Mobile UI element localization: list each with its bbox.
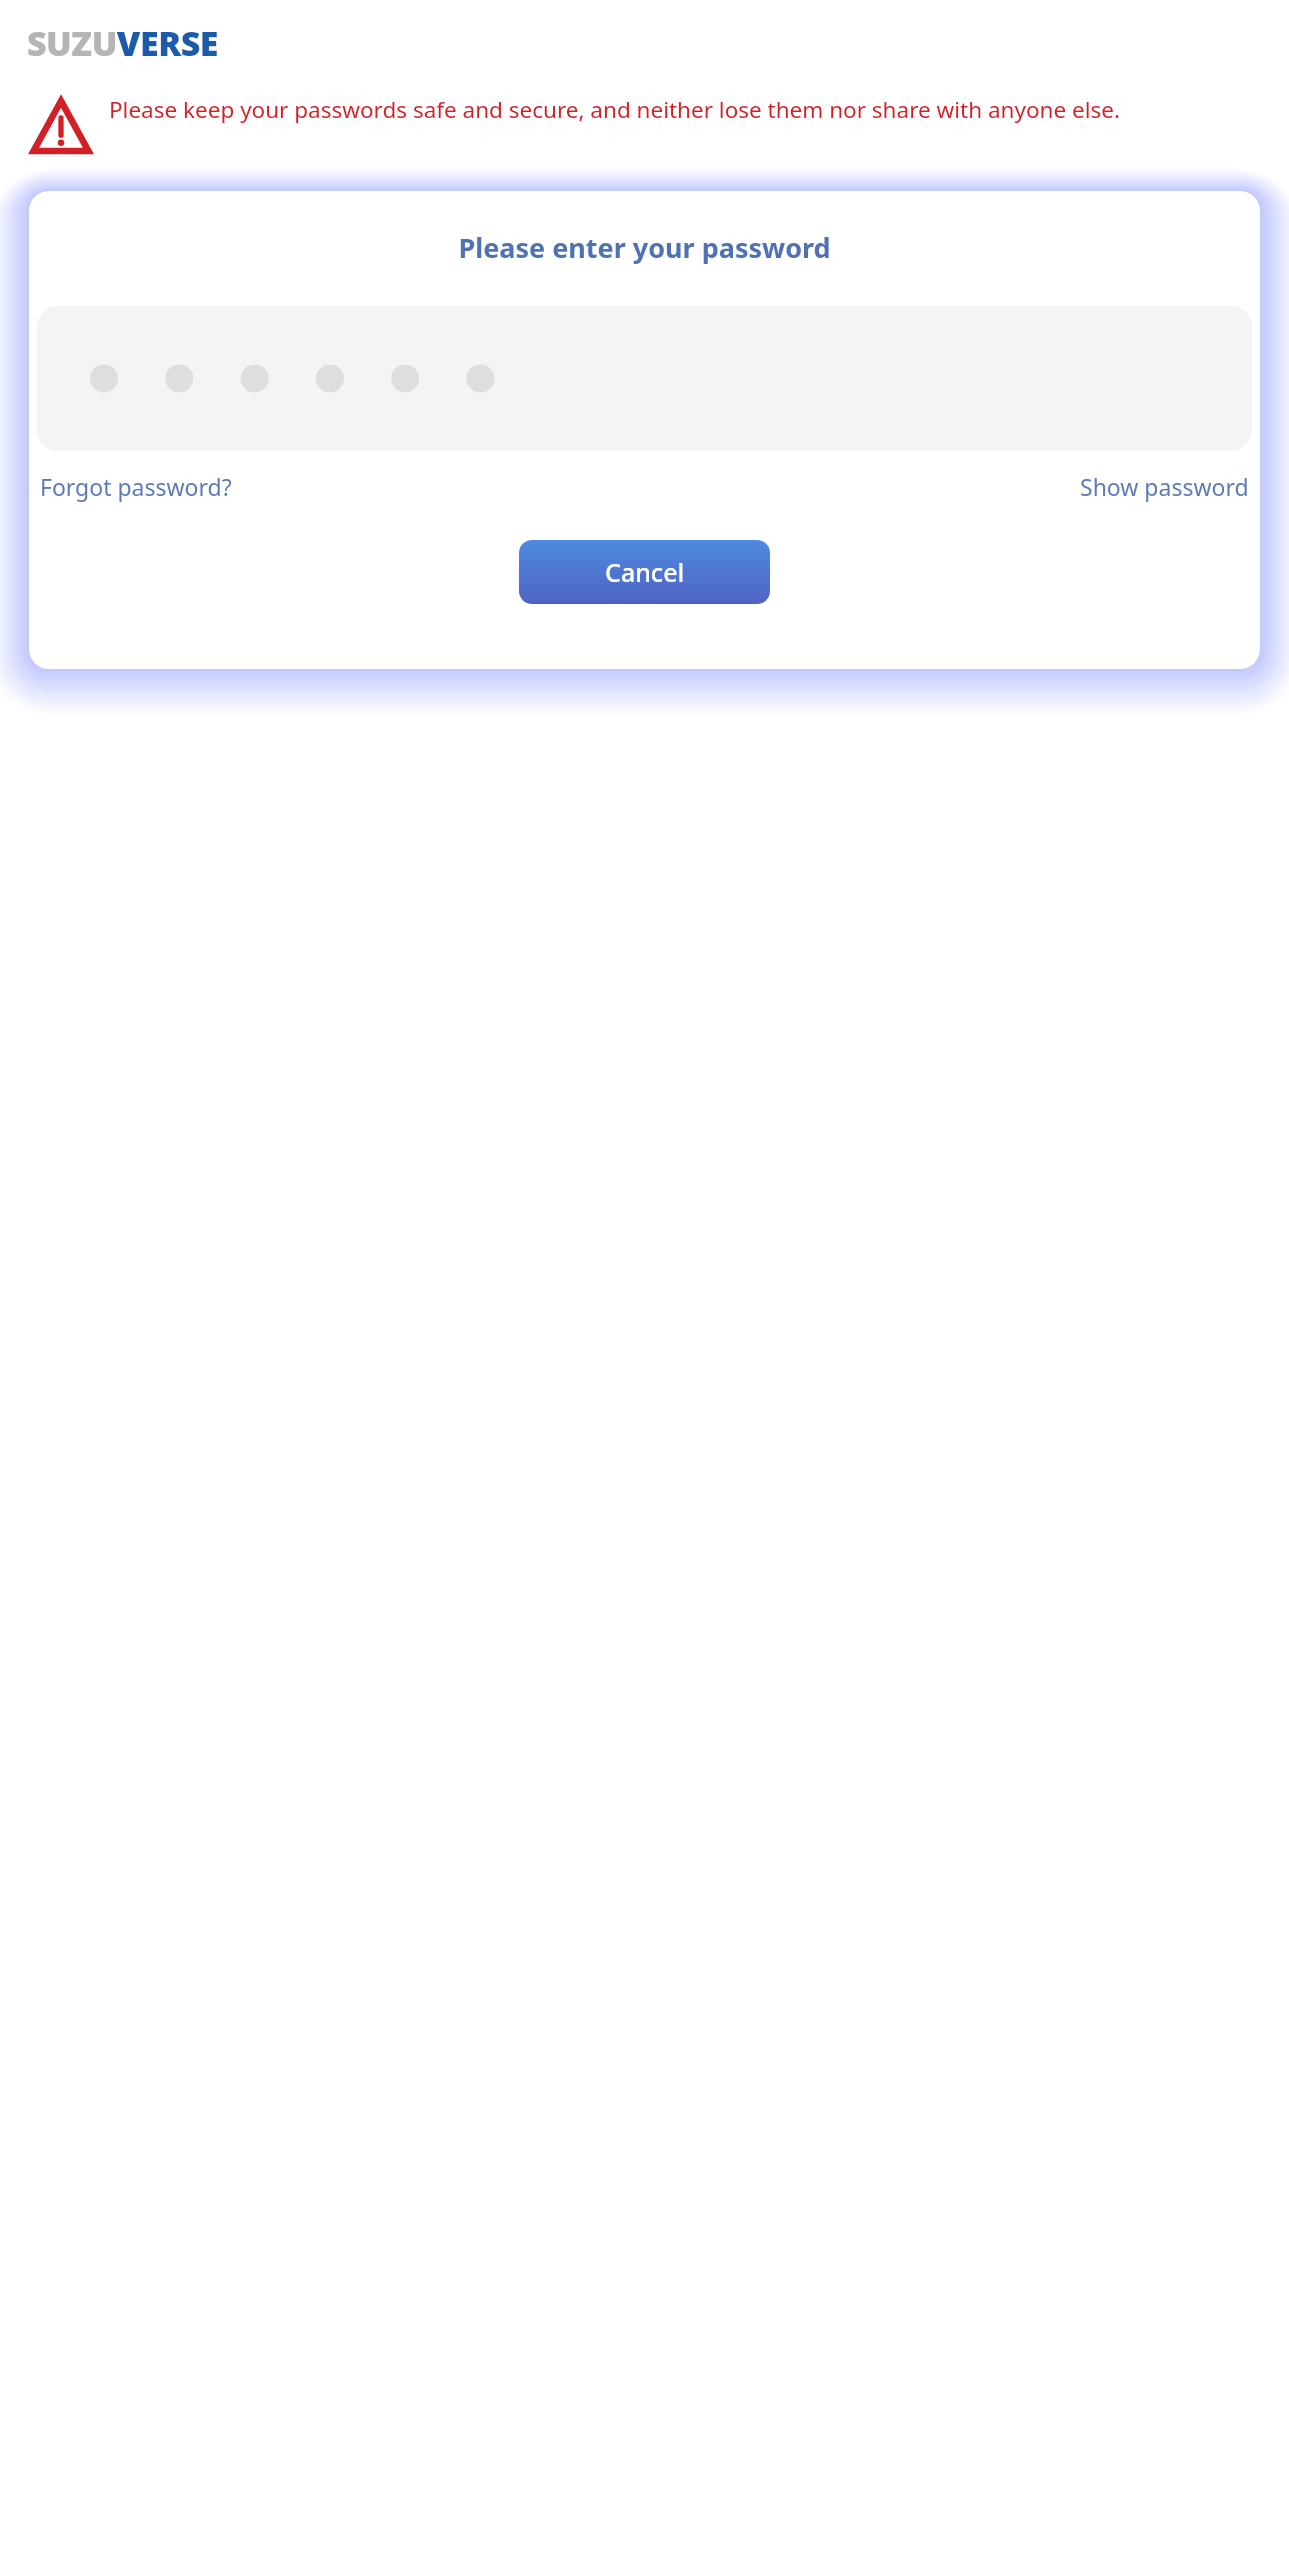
button[interactable]: Forgot password? — [40, 471, 232, 502]
staticText: Please enter your password — [458, 229, 831, 266]
button[interactable]: SUZUVERSE — [27, 20, 218, 66]
staticText: Cancel — [605, 555, 685, 589]
button[interactable]: Cancel — [519, 540, 770, 604]
other: Warning — [30, 97, 92, 155]
button[interactable]: Password entry field — [37, 306, 1252, 451]
staticText: Please keep your passwords safe and secu… — [109, 94, 1120, 125]
staticText: SUZUVERSE — [27, 20, 218, 66]
button[interactable]: Show password — [1080, 471, 1249, 502]
staticText: Show password — [1080, 471, 1249, 502]
staticText: Forgot password? — [40, 471, 232, 502]
